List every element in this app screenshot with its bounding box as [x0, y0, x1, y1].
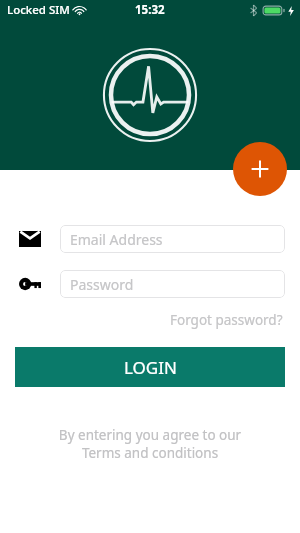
button[interactable]: Add [233, 142, 287, 196]
staticText: Locked SIM [7, 2, 70, 18]
staticText: 15:32 [135, 2, 165, 18]
button[interactable]: Email Address [0, 225, 60, 253]
staticText: LOGIN [124, 356, 177, 379]
button[interactable]: Forgot password? [168, 309, 285, 331]
staticText: Forgot password? [170, 311, 283, 329]
button[interactable]: Password [60, 270, 285, 298]
staticText: Email Address [70, 230, 163, 249]
button[interactable]: LOGIN [15, 347, 285, 387]
staticText: By entering you agree to our Terms and c… [0, 426, 300, 462]
button[interactable]: Email Address [60, 225, 285, 253]
staticText: Password [70, 275, 134, 294]
button[interactable]: Password [0, 270, 60, 298]
